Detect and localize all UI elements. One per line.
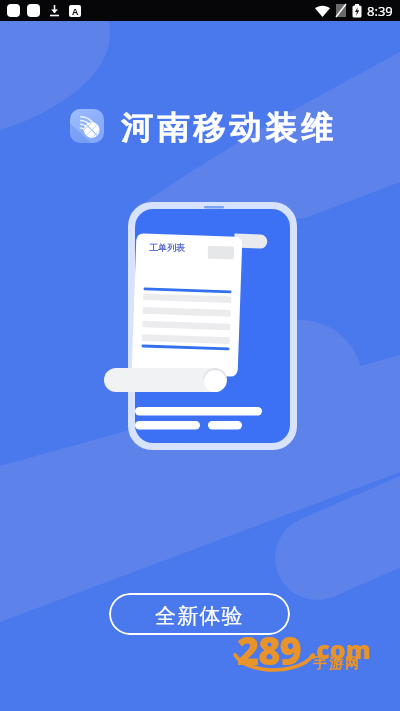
staticText: .com [309, 632, 371, 666]
staticText: A [72, 5, 79, 17]
staticText: 289 [237, 624, 301, 676]
button[interactable]: 全新体验 [109, 593, 290, 635]
staticText: 河南移动装维 [119, 108, 335, 148]
staticText: 全新体验 [155, 603, 244, 629]
staticText: 8:39 [367, 2, 393, 20]
staticText: 工单列表 [149, 242, 185, 253]
staticText: 手游网 [312, 655, 360, 673]
